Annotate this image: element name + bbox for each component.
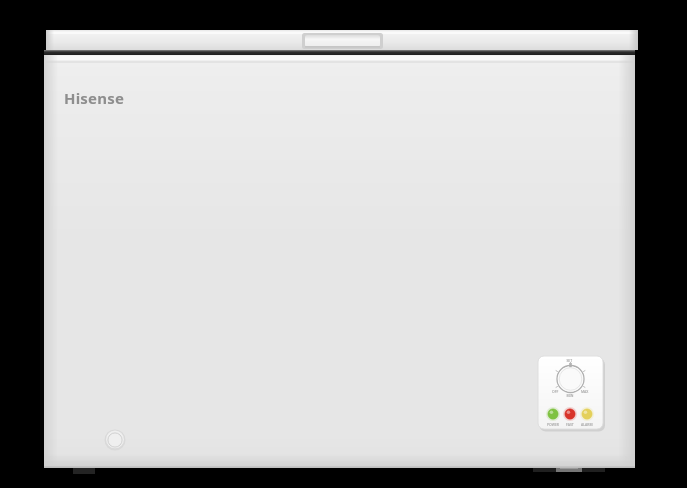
button[interactable]: Hisense chest freezer product image [0,0,687,488]
